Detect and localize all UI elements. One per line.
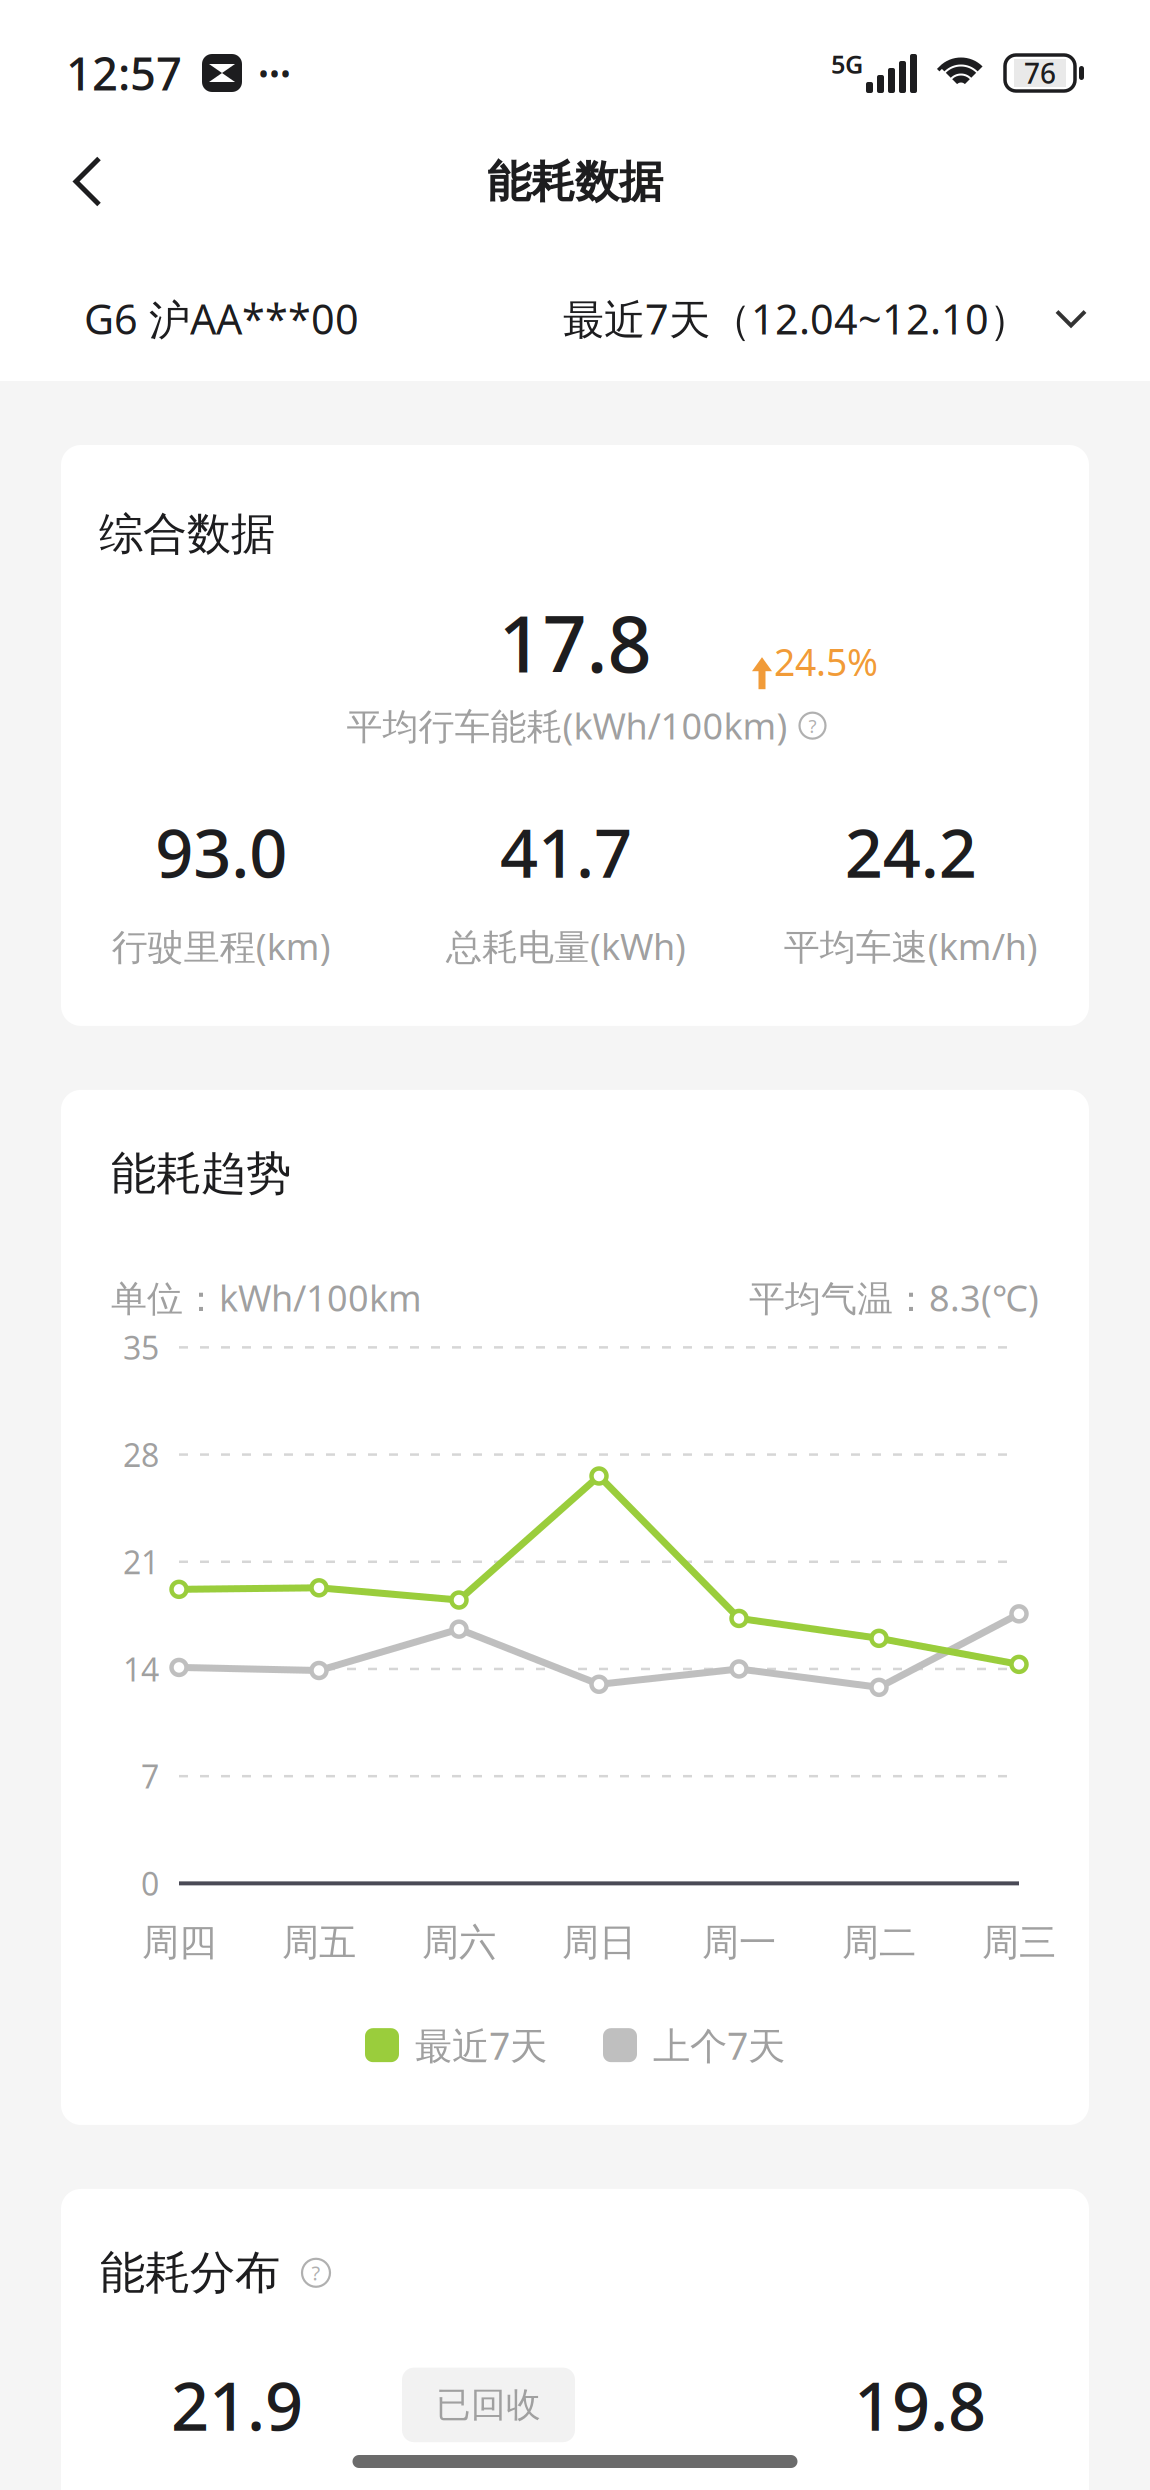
staticText: 上个7天 xyxy=(653,2020,785,2070)
staticText: 周三 xyxy=(982,1919,1056,1965)
staticText: 周四 xyxy=(142,1919,216,1965)
button[interactable]: Back xyxy=(0,130,145,233)
staticText: 76 xyxy=(1024,54,1056,92)
staticText: ? xyxy=(808,713,816,738)
staticText: 24.2 xyxy=(845,807,977,896)
staticText: 单位：kWh/100km xyxy=(111,1274,422,1321)
staticText: 最近7天 xyxy=(415,2020,547,2070)
staticText: 41.7 xyxy=(500,807,632,896)
staticText: 周二 xyxy=(842,1919,916,1965)
staticText: 平均气温：8.3(℃) xyxy=(749,1274,1039,1321)
staticText: 行驶里程(km) xyxy=(112,922,331,970)
staticText: 35 xyxy=(123,1326,159,1369)
staticText: 17.8 xyxy=(498,591,651,694)
staticText: 14 xyxy=(123,1648,159,1690)
staticText: G6 沪AA***00 xyxy=(84,291,359,346)
staticText: 综合数据 xyxy=(99,507,275,561)
staticText: 93.0 xyxy=(155,807,287,896)
staticText: ••• xyxy=(258,53,291,92)
staticText: 24.5% xyxy=(774,637,878,686)
staticText: 能耗分布 xyxy=(100,2245,280,2301)
button[interactable]: 最近7天（12.04~12.10） xyxy=(563,291,1088,346)
staticText: 平均行车能耗(kWh/100km) xyxy=(346,702,787,749)
staticText: 7 xyxy=(141,1755,159,1797)
staticText: 已回收 xyxy=(436,2384,541,2426)
staticText: 周五 xyxy=(282,1919,356,1965)
staticText: 28 xyxy=(123,1433,159,1476)
staticText: 平均车速(km/h) xyxy=(784,922,1038,970)
staticText: 5G xyxy=(831,47,863,81)
staticText: 最近7天（12.04~12.10） xyxy=(563,291,1030,346)
staticText: 周六 xyxy=(422,1919,496,1965)
staticText: 能耗趋势 xyxy=(111,1146,291,1202)
staticText: ? xyxy=(311,2259,320,2286)
staticText: 12:57 xyxy=(66,43,182,103)
staticText: 21 xyxy=(123,1540,159,1583)
staticText: 19.8 xyxy=(854,2361,986,2449)
staticText: 周一 xyxy=(702,1919,776,1965)
staticText: 0 xyxy=(141,1862,159,1905)
staticText: 周日 xyxy=(562,1919,636,1965)
staticText: 21.9 xyxy=(171,2361,303,2449)
staticText: 能耗数据 xyxy=(487,155,663,209)
staticText: 总耗电量(kWh) xyxy=(446,922,686,970)
